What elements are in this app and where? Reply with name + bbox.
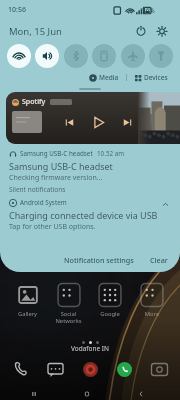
staticText: 10.52 am bbox=[97, 149, 125, 158]
staticText: Vodafone IN bbox=[0, 344, 180, 353]
staticText: Mon, 15 Jun bbox=[9, 25, 62, 38]
button[interactable]: Flight mode bbox=[121, 44, 145, 68]
button[interactable]: Play bbox=[87, 111, 109, 133]
button[interactable]: Clear bbox=[146, 253, 172, 267]
button[interactable]: Previous bbox=[60, 113, 78, 131]
button[interactable]: Social Networks bbox=[51, 282, 86, 325]
staticText: Charging connected device via USB bbox=[9, 209, 158, 221]
button[interactable]: Google bbox=[92, 282, 128, 318]
staticText: More bbox=[134, 310, 170, 318]
staticText: Samsung USB-C headset bbox=[20, 149, 93, 158]
button[interactable]: Home bbox=[73, 388, 107, 400]
button[interactable]: Phone bbox=[8, 357, 33, 382]
button[interactable]: Browser bbox=[78, 357, 103, 382]
button[interactable]: Back bbox=[127, 388, 161, 400]
button[interactable]: Devices bbox=[131, 71, 171, 84]
button[interactable]: Collapse bbox=[159, 198, 171, 210]
button[interactable]: Media bbox=[86, 71, 122, 84]
button[interactable]: Gallery bbox=[10, 282, 45, 318]
button[interactable]: Power bbox=[132, 22, 150, 40]
staticText: Tap for other USB options. bbox=[9, 222, 96, 232]
staticText: Social Networks bbox=[51, 310, 86, 325]
button[interactable]: Wi-Fi bbox=[7, 44, 31, 68]
button[interactable]: Next bbox=[118, 113, 136, 131]
button[interactable]: NFC bbox=[92, 44, 116, 68]
button[interactable]: Recents bbox=[20, 388, 54, 400]
staticText: 10:56 bbox=[8, 5, 26, 15]
staticText: Spotify bbox=[22, 97, 46, 107]
button[interactable]: WhatsApp bbox=[112, 357, 137, 382]
button[interactable]: Messages bbox=[43, 357, 68, 382]
staticText: Clear bbox=[150, 255, 168, 265]
button[interactable]: Settings bbox=[153, 22, 171, 40]
staticText: Devices bbox=[144, 73, 168, 82]
staticText: Notification settings bbox=[64, 255, 134, 265]
staticText: Google bbox=[92, 310, 128, 318]
button[interactable]: Samsung USB-C headset bbox=[0, 149, 180, 183]
button[interactable]: Sound bbox=[35, 44, 59, 68]
button[interactable]: Flashlight bbox=[149, 44, 173, 68]
staticText: Media bbox=[99, 73, 119, 82]
staticText: Checking firmware version... bbox=[9, 173, 103, 183]
staticText: Android System bbox=[20, 198, 67, 207]
staticText: Gallery bbox=[10, 310, 45, 318]
button[interactable]: Spotify bbox=[6, 92, 180, 144]
button[interactable]: Android System bbox=[0, 198, 180, 232]
button[interactable]: Notification settings bbox=[60, 253, 138, 267]
button[interactable]: Camera bbox=[147, 357, 172, 382]
staticText: Silent notifications bbox=[9, 185, 66, 194]
staticText: 36% bbox=[142, 6, 155, 15]
button[interactable]: Bluetooth bbox=[64, 44, 88, 68]
staticText: Samsung USB-C headset bbox=[9, 160, 113, 172]
button[interactable]: More bbox=[134, 282, 170, 318]
